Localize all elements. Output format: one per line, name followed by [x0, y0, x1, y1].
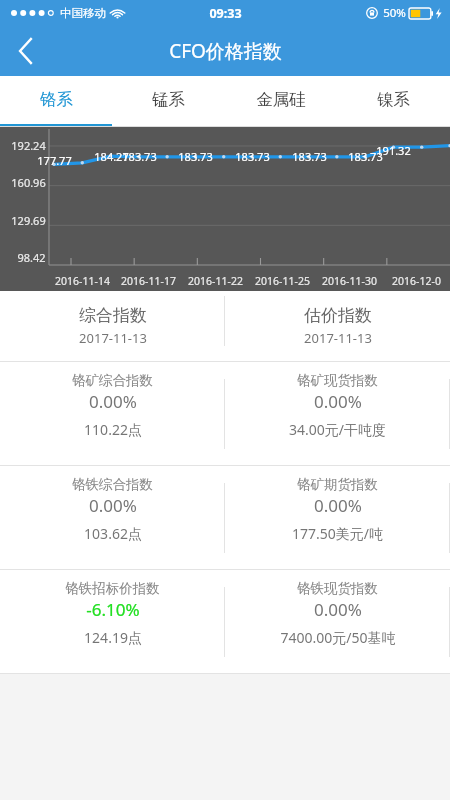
button[interactable]: 估价指数: [225, 291, 450, 361]
staticText: 铬矿现货指数: [297, 372, 378, 389]
button[interactable]: 铬矿现货指数: [225, 362, 450, 465]
button[interactable]: 铬铁综合指数: [0, 466, 225, 569]
button[interactable]: 铬矿综合指数: [0, 362, 225, 465]
staticText: 金属硅: [256, 89, 306, 110]
staticText: 177.50美元/吨: [292, 524, 383, 543]
staticText: 铬铁综合指数: [72, 476, 153, 493]
staticText: 铬系: [40, 89, 73, 110]
staticText: -6.10%: [86, 598, 140, 621]
staticText: 2016-11-30: [322, 274, 377, 288]
staticText: 124.19点: [84, 628, 142, 647]
staticText: 183.73: [292, 149, 327, 164]
staticText: 综合指数: [79, 305, 147, 326]
staticText: 50%: [383, 5, 406, 21]
button[interactable]: 锰系: [112, 76, 224, 127]
staticText: 183.73: [235, 149, 270, 164]
staticText: 锰系: [152, 89, 185, 110]
staticText: 183.73: [122, 149, 157, 164]
staticText: 2016-11-14: [55, 274, 110, 288]
staticText: 183.73: [178, 149, 213, 164]
button[interactable]: 铬系: [0, 76, 112, 127]
button[interactable]: 金属硅: [224, 76, 337, 127]
staticText: 177.77: [37, 153, 72, 168]
staticText: 2016-11-22: [188, 274, 243, 288]
staticText: 09:33: [209, 5, 242, 22]
staticText: 103.62点: [84, 524, 142, 543]
button[interactable]: 综合指数: [0, 291, 225, 361]
staticText: 34.00元/干吨度: [289, 420, 386, 439]
staticText: 129.69: [11, 213, 46, 228]
staticText: 0.00%: [314, 494, 362, 517]
staticText: 0.00%: [314, 390, 362, 413]
staticText: 183.73: [348, 149, 383, 164]
staticText: 184.27: [94, 149, 129, 164]
staticText: 7400.00元/50基吨: [280, 628, 396, 647]
staticText: 98.42: [17, 250, 46, 265]
staticText: 2016-11-25: [255, 274, 310, 288]
staticText: 2016-11-17: [121, 274, 176, 288]
staticText: 铬矿期货指数: [297, 476, 378, 493]
button[interactable]: 铬矿期货指数: [225, 466, 450, 569]
staticText: 铬铁招标价指数: [65, 580, 160, 597]
staticText: 160.96: [11, 175, 46, 190]
staticText: 191.32: [376, 143, 411, 158]
staticText: 铬矿综合指数: [72, 372, 153, 389]
staticText: 2017-11-13: [79, 329, 147, 347]
staticText: 0.00%: [89, 494, 137, 517]
button[interactable]: 铬铁现货指数: [225, 570, 450, 673]
staticText: 2017-11-13: [304, 329, 372, 347]
staticText: 镍系: [377, 89, 410, 110]
staticText: 铬铁现货指数: [297, 580, 378, 597]
staticText: 192.24: [11, 138, 46, 153]
staticText: 估价指数: [304, 305, 372, 326]
button[interactable]: 镍系: [337, 76, 450, 127]
staticText: 中国移动: [60, 6, 106, 20]
staticText: 2016-12-0: [392, 274, 441, 288]
button[interactable]: 铬铁招标价指数: [0, 570, 225, 673]
staticText: 0.00%: [89, 390, 137, 413]
staticText: CFO价格指数: [169, 38, 282, 64]
staticText: 0.00%: [314, 598, 362, 621]
button[interactable]: Back: [0, 26, 50, 76]
staticText: 110.22点: [84, 420, 142, 439]
